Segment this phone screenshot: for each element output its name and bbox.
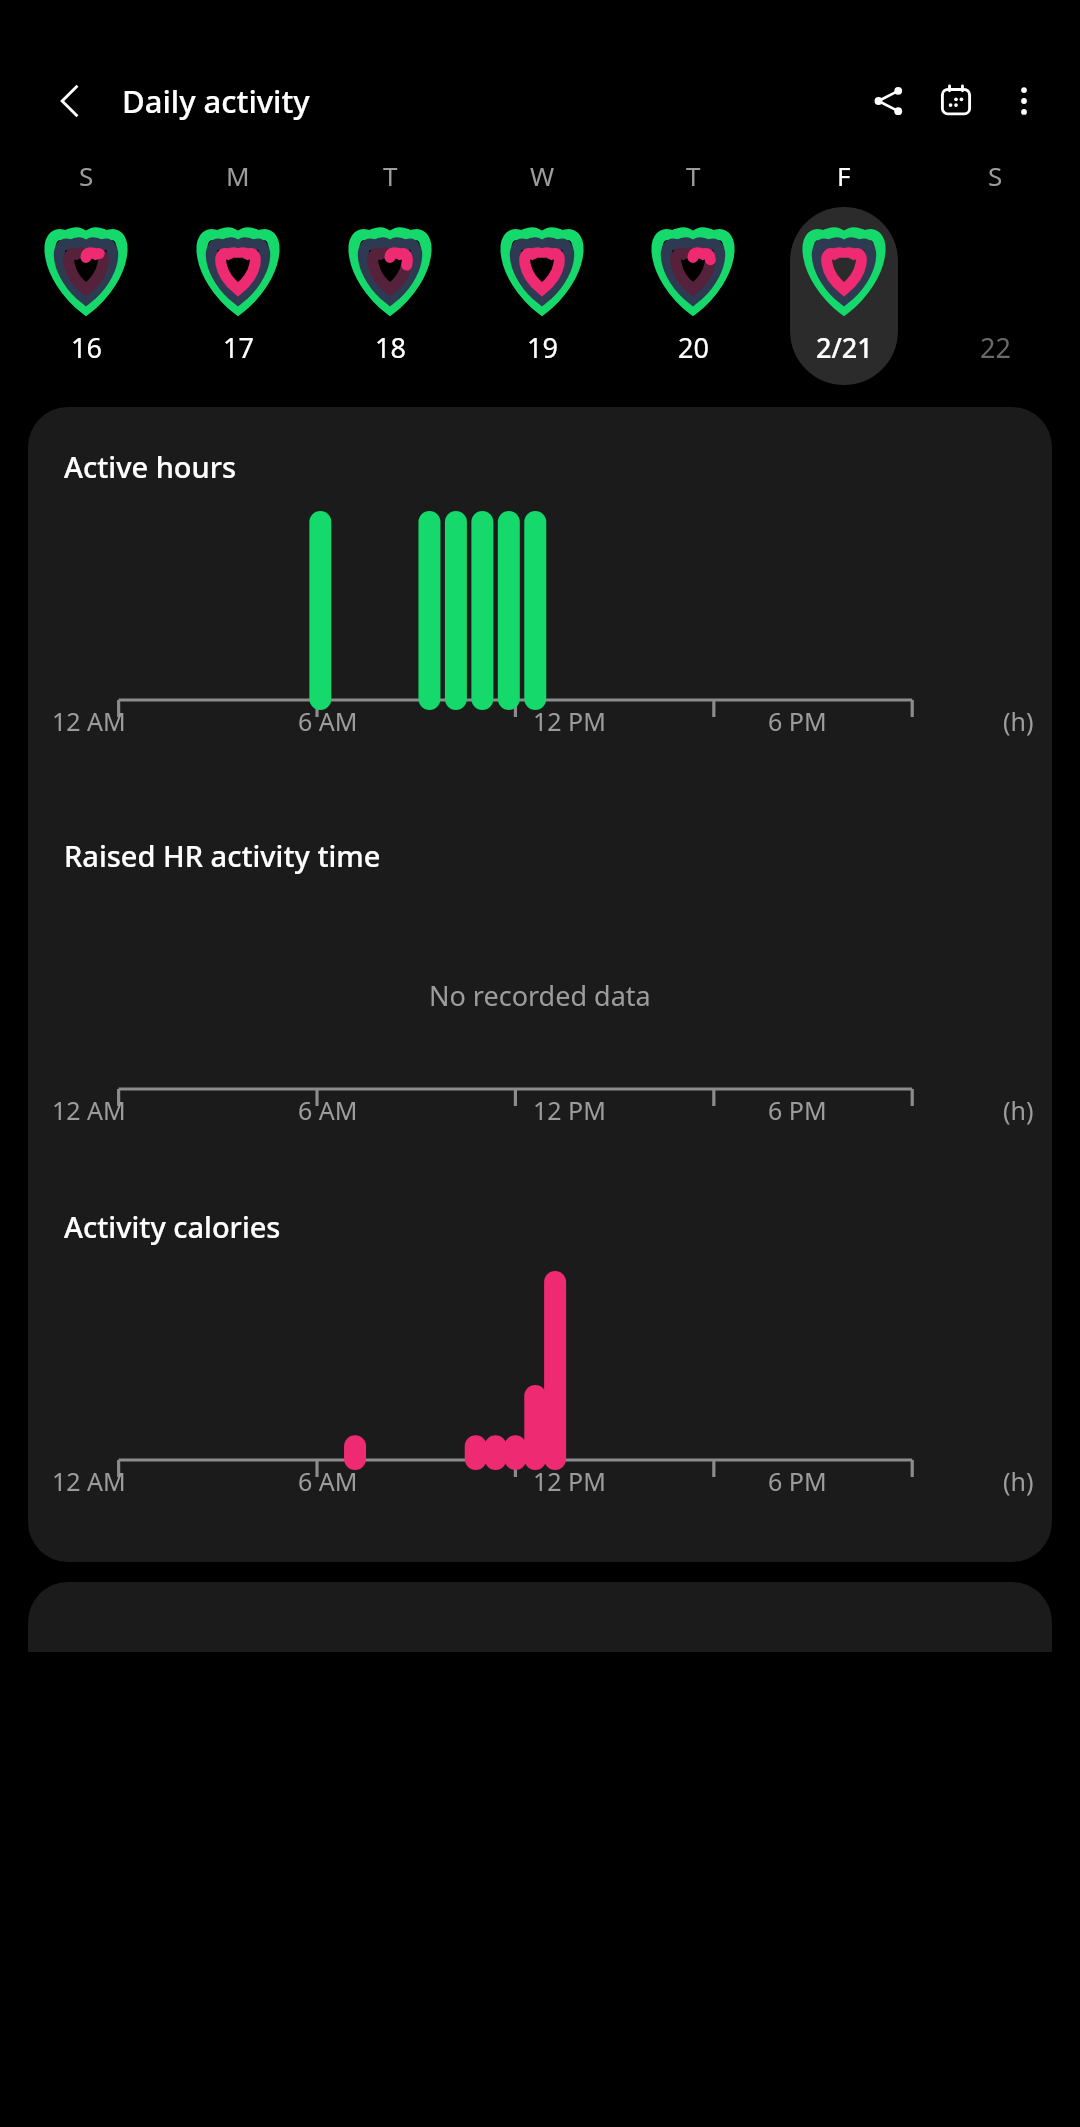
staticText: 12 PM <box>533 1464 606 1498</box>
staticText: 12 PM <box>533 1093 606 1127</box>
staticText: Activity calories <box>64 1207 281 1246</box>
staticText: T <box>383 158 398 193</box>
staticText: 19 <box>527 329 558 366</box>
button[interactable]: T <box>617 158 768 385</box>
staticText: 20 <box>678 329 709 366</box>
staticText: Daily activity <box>122 80 310 122</box>
staticText: S <box>988 158 1003 193</box>
staticText: (h) <box>1003 1464 1034 1498</box>
button[interactable]: F <box>768 158 919 385</box>
staticText: 22 <box>980 329 1011 366</box>
staticText: 6 PM <box>768 704 827 738</box>
staticText: 18 <box>375 329 406 366</box>
staticText: (h) <box>1003 704 1034 738</box>
button[interactable]: Share <box>854 67 922 135</box>
staticText: 6 AM <box>298 1464 358 1498</box>
button[interactable]: S <box>919 158 1070 385</box>
button[interactable]: W <box>466 158 617 385</box>
staticText: 12 AM <box>52 1093 126 1127</box>
staticText: 6 AM <box>298 1093 358 1127</box>
staticText: No recorded data <box>429 977 651 1014</box>
staticText: W <box>530 158 555 193</box>
staticText: 2/21 <box>816 329 873 366</box>
staticText: 6 AM <box>298 704 358 738</box>
staticText: Raised HR activity time <box>64 836 381 875</box>
button[interactable]: M <box>162 158 314 385</box>
staticText: 16 <box>71 329 102 366</box>
staticText: (h) <box>1003 1093 1034 1127</box>
staticText: T <box>686 158 701 193</box>
staticText: S <box>79 158 94 193</box>
button[interactable]: Back <box>42 72 100 130</box>
staticText: F <box>837 158 851 193</box>
staticText: 6 PM <box>768 1464 827 1498</box>
button[interactable]: T <box>314 158 466 385</box>
staticText: M <box>226 158 250 193</box>
staticText: 12 PM <box>533 704 606 738</box>
staticText: 17 <box>223 329 254 366</box>
staticText: 12 AM <box>52 704 126 738</box>
staticText: 12 AM <box>52 1464 126 1498</box>
button[interactable]: More options <box>990 67 1058 135</box>
button[interactable]: Calendar <box>922 67 990 135</box>
button[interactable]: S <box>10 158 162 385</box>
staticText: 6 PM <box>768 1093 827 1127</box>
staticText: Active hours <box>64 447 237 486</box>
